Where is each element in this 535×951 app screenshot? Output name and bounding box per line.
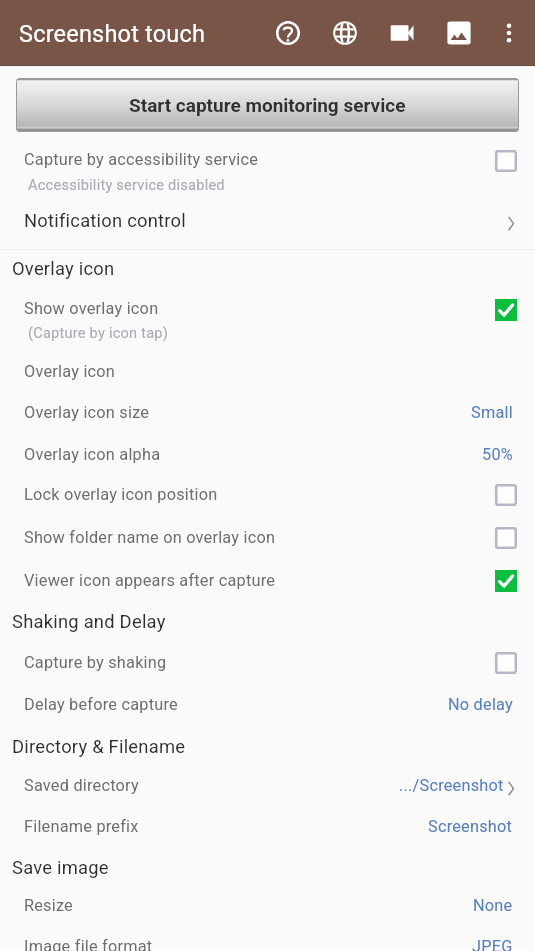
staticText: Save image xyxy=(12,857,109,879)
staticText: Image file format xyxy=(24,937,153,951)
staticText: Accessibility service disabled xyxy=(28,176,225,193)
button[interactable]: Image file format xyxy=(0,927,535,951)
button[interactable]: Help xyxy=(263,8,313,58)
staticText: Overlay icon xyxy=(24,362,116,381)
staticText: Show folder name on overlay icon xyxy=(24,528,276,547)
staticText: .../Screenshot xyxy=(399,776,504,795)
staticText: Delay before capture xyxy=(24,695,178,714)
button[interactable]: Viewer icon appears after capture xyxy=(0,561,535,603)
staticText: Overlay icon alpha xyxy=(24,445,161,464)
button[interactable]: Filename prefix xyxy=(0,807,535,847)
button[interactable]: Notification control xyxy=(0,201,535,241)
staticText: JPEG xyxy=(472,937,513,951)
staticText: Screenshot touch xyxy=(19,20,206,48)
staticText: No delay xyxy=(448,695,513,714)
button[interactable]: Resize xyxy=(0,886,535,926)
staticText: Start capture monitoring service xyxy=(129,94,406,116)
staticText: Screenshot xyxy=(428,817,513,836)
staticText: Notification control xyxy=(24,210,186,232)
staticText: Shaking and Delay xyxy=(12,611,166,633)
staticText: (Capture by icon tap) xyxy=(28,324,169,341)
button[interactable]: Show overlay icon xyxy=(0,291,535,343)
button[interactable]: More options xyxy=(484,8,534,58)
staticText: Capture by accessibility service xyxy=(24,150,259,169)
button[interactable]: Lock overlay icon position xyxy=(0,475,535,517)
staticText: Filename prefix xyxy=(24,817,139,836)
button[interactable]: Start capture monitoring service xyxy=(16,78,519,132)
button[interactable]: Gallery xyxy=(434,8,484,58)
staticText: Small xyxy=(471,403,513,422)
staticText: Lock overlay icon position xyxy=(24,485,218,504)
staticText: None xyxy=(473,896,513,915)
button[interactable]: Capture by shaking xyxy=(0,643,535,685)
button[interactable]: Overlay icon xyxy=(0,352,535,392)
staticText: Saved directory xyxy=(24,776,139,795)
staticText: 50% xyxy=(482,445,513,464)
button[interactable]: Capture by accessibility service xyxy=(0,142,535,194)
button[interactable]: Overlay icon alpha xyxy=(0,435,535,475)
staticText: Directory & Filename xyxy=(12,736,186,758)
staticText: Show overlay icon xyxy=(24,299,159,318)
staticText: Capture by shaking xyxy=(24,653,167,672)
button[interactable]: Overlay icon size xyxy=(0,393,535,433)
staticText: Viewer icon appears after capture xyxy=(24,571,276,590)
staticText: Overlay icon xyxy=(12,258,115,280)
staticText: Overlay icon size xyxy=(24,403,150,422)
button[interactable]: Show folder name on overlay icon xyxy=(0,518,535,560)
button[interactable]: Delay before capture xyxy=(0,685,535,725)
button[interactable]: Saved directory xyxy=(0,766,535,806)
staticText: Resize xyxy=(24,896,73,915)
button[interactable]: Record video xyxy=(377,8,427,58)
button[interactable]: Language xyxy=(320,8,370,58)
